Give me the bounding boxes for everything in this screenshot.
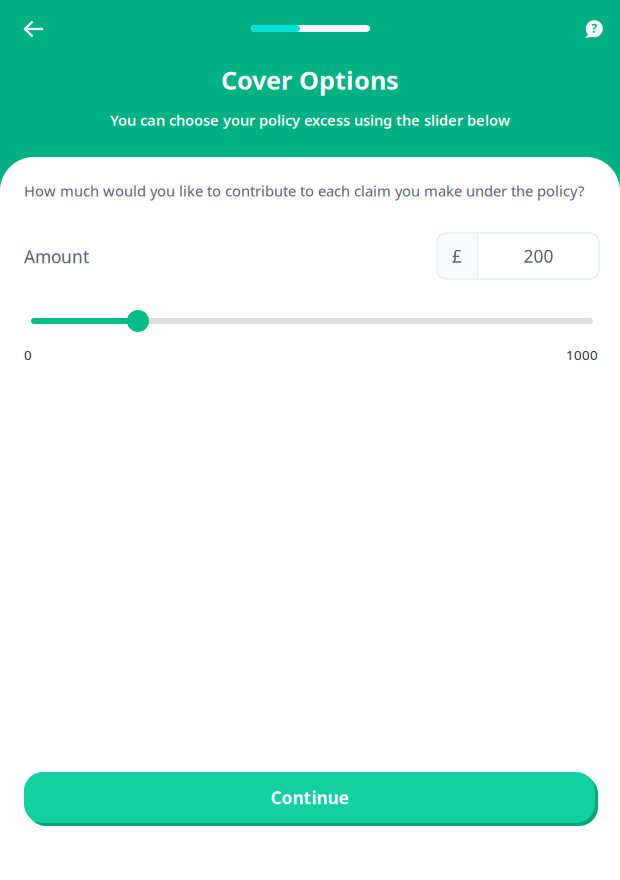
staticText: 1000 <box>566 346 598 364</box>
staticText: Continue <box>270 786 348 809</box>
staticText: How much would you like to contribute to… <box>24 181 584 200</box>
button[interactable]: Amount in pounds <box>437 233 599 279</box>
staticText: 0 <box>24 346 32 364</box>
button[interactable]: Continue <box>24 772 599 827</box>
button[interactable]: Excess amount slider <box>24 308 596 334</box>
staticText: You can choose your policy excess using … <box>110 110 510 130</box>
staticText: 200 <box>523 244 553 267</box>
button[interactable]: Help <box>572 7 616 51</box>
staticText: £ <box>452 244 462 267</box>
staticText: ? <box>591 20 597 36</box>
button[interactable]: Back <box>12 7 56 51</box>
staticText: Amount <box>24 245 89 268</box>
staticText: Cover Options <box>221 63 399 97</box>
